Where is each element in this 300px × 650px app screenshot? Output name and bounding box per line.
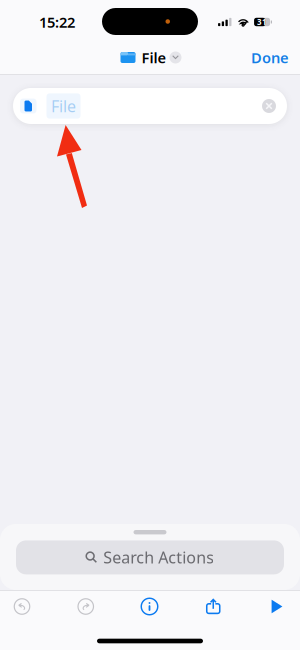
staticText: File (51, 95, 76, 117)
button[interactable]: Undo (7, 591, 37, 621)
staticText: 15:22 (39, 12, 75, 32)
staticText: Done (251, 48, 289, 67)
staticText: Search Actions (103, 547, 214, 568)
button[interactable]: Info (134, 591, 164, 621)
button[interactable]: Done (241, 45, 299, 74)
button[interactable]: Run (262, 591, 292, 621)
button[interactable]: Redo (71, 591, 101, 621)
staticText: File (141, 48, 166, 67)
button[interactable]: Share (198, 591, 228, 621)
button[interactable]: Search Actions (0, 534, 300, 574)
button[interactable]: File (119, 50, 180, 69)
staticText: 31 (257, 17, 267, 27)
button[interactable]: File (13, 88, 287, 124)
